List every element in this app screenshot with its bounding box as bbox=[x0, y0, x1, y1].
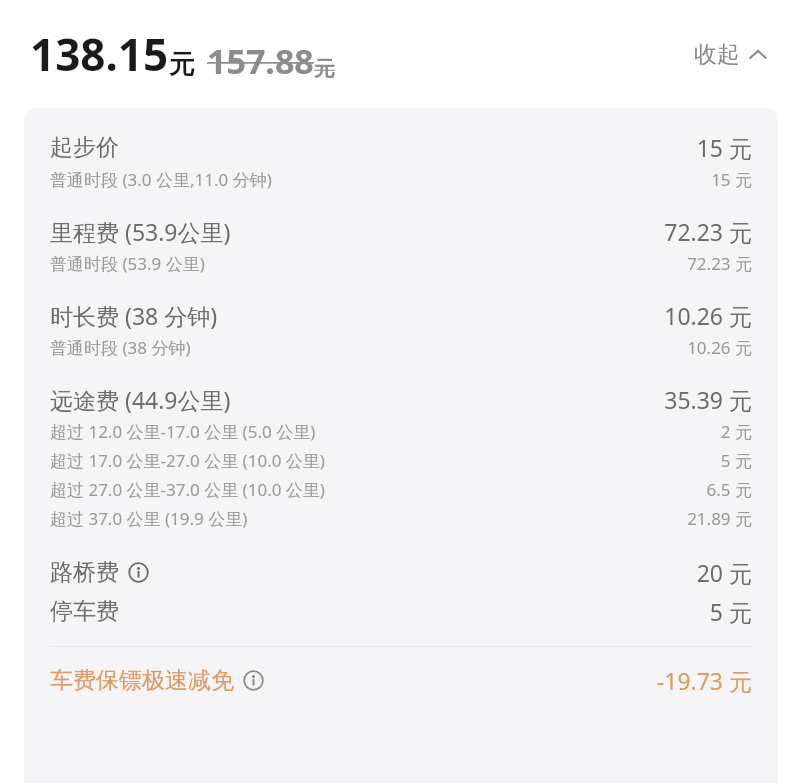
staticText: 收起 bbox=[694, 40, 740, 69]
staticText: 20 元 bbox=[696, 557, 752, 588]
staticText: 5 元 bbox=[720, 449, 752, 472]
staticText: 72.23 元 bbox=[664, 216, 752, 247]
button[interactable]: 里程费 (53.9公里) bbox=[24, 210, 778, 249]
staticText: 15 元 bbox=[696, 132, 752, 163]
other: More information bbox=[128, 562, 149, 583]
staticText: 超过 17.0 公里-27.0 公里 (10.0 公里) bbox=[50, 449, 325, 472]
staticText: 2 元 bbox=[720, 420, 752, 443]
staticText: 路桥费 bbox=[50, 558, 119, 587]
staticText: 车费保镖极速减免 bbox=[50, 666, 234, 695]
staticText: 普通时段 (3.0 公里,11.0 分钟) bbox=[50, 168, 272, 191]
button[interactable]: 远途费 (44.9公里) bbox=[24, 378, 778, 417]
other: More information bbox=[243, 670, 264, 691]
staticText: 普通时段 (53.9 公里) bbox=[50, 252, 205, 275]
staticText: 15 元 bbox=[711, 168, 752, 191]
staticText: 时长费 (38 分钟) bbox=[50, 300, 218, 331]
staticText: 21.89 元 bbox=[687, 507, 752, 530]
staticText: 里程费 (53.9公里) bbox=[50, 216, 231, 247]
button[interactable]: 起步价 bbox=[24, 126, 778, 165]
button[interactable]: 车费保镖极速减免 bbox=[24, 661, 778, 700]
staticText: 普通时段 (38 分钟) bbox=[50, 336, 191, 359]
staticText: -19.73 元 bbox=[656, 665, 752, 696]
staticText: 超过 12.0 公里-17.0 公里 (5.0 公里) bbox=[50, 420, 316, 443]
staticText: 远途费 (44.9公里) bbox=[50, 384, 231, 415]
staticText: 起步价 bbox=[50, 133, 119, 162]
staticText: 157.88 bbox=[207, 38, 314, 84]
staticText: 元 bbox=[314, 56, 335, 82]
button[interactable]: 时长费 (38 分钟) bbox=[24, 294, 778, 333]
staticText: 72.23 元 bbox=[687, 252, 752, 275]
button[interactable]: 收起 bbox=[688, 34, 774, 75]
staticText: 超过 27.0 公里-37.0 公里 (10.0 公里) bbox=[50, 478, 325, 501]
button[interactable]: 停车费 bbox=[24, 590, 778, 629]
staticText: 6.5 元 bbox=[706, 478, 752, 501]
staticText: 元 bbox=[169, 48, 195, 81]
staticText: 35.39 元 bbox=[664, 384, 752, 415]
button[interactable]: 路桥费 bbox=[24, 551, 778, 590]
staticText: 超过 37.0 公里 (19.9 公里) bbox=[50, 507, 248, 530]
staticText: 10.26 元 bbox=[664, 300, 752, 331]
staticText: 停车费 bbox=[50, 597, 119, 626]
staticText: 10.26 元 bbox=[687, 336, 752, 359]
staticText: 138.15 bbox=[30, 24, 169, 84]
staticText: 5 元 bbox=[709, 596, 752, 627]
